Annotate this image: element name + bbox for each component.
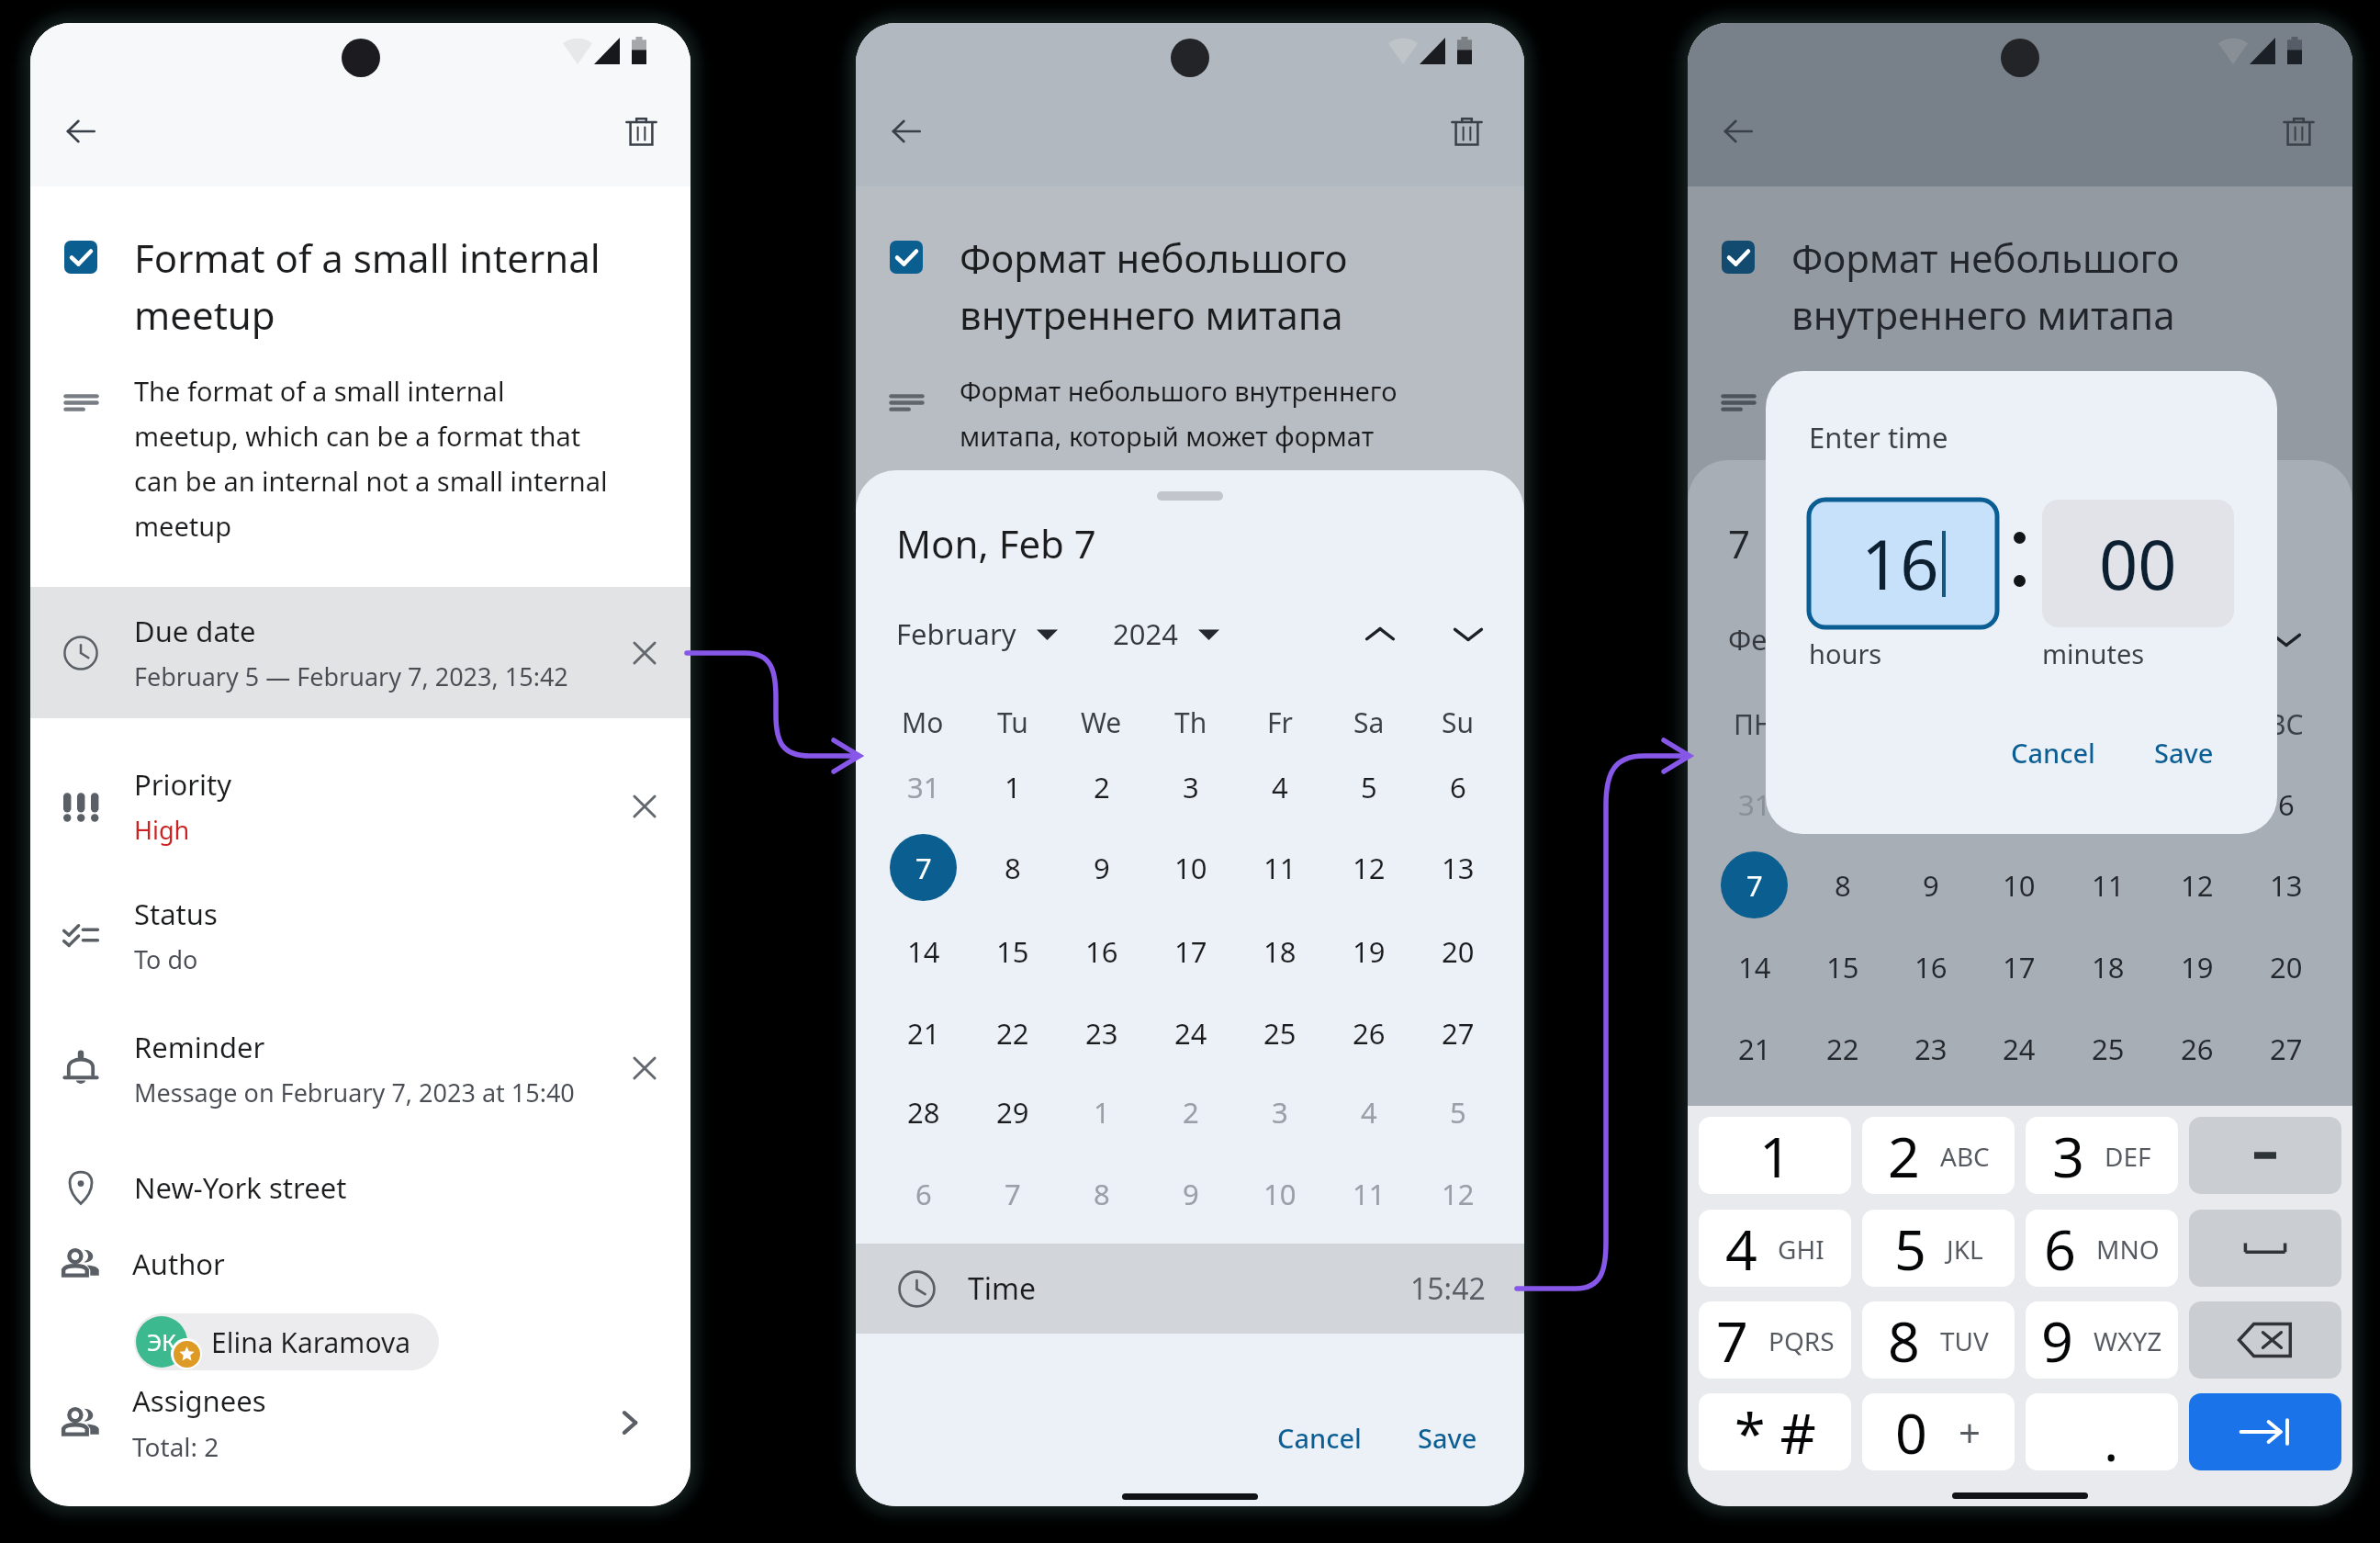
button[interactable]: Time xyxy=(856,1244,1524,1334)
button[interactable]: 16 xyxy=(1809,500,1997,627)
button[interactable]: 4 xyxy=(1246,753,1313,820)
button[interactable]: 10 xyxy=(1985,851,2052,918)
button[interactable]: 11 xyxy=(1335,1160,1402,1227)
button[interactable]: 1 xyxy=(1068,1078,1135,1145)
button[interactable]: Open assignees xyxy=(603,1397,655,1448)
button[interactable]: Next month xyxy=(1440,609,1497,659)
button[interactable]: 9 xyxy=(2026,1301,2178,1379)
button[interactable]: 1 xyxy=(979,753,1046,820)
button[interactable]: Cancel xyxy=(1993,725,2114,780)
button[interactable]: Status xyxy=(30,871,690,1000)
button[interactable]: 10 xyxy=(1157,834,1224,901)
button[interactable]: 27 xyxy=(1424,999,1491,1066)
button[interactable]: 19 xyxy=(1335,918,1402,985)
button[interactable]: Due date xyxy=(30,587,690,718)
button[interactable]: 28 xyxy=(890,1078,957,1145)
button[interactable]: Save xyxy=(1399,1410,1496,1465)
button[interactable]: Reminder xyxy=(30,1000,690,1136)
button[interactable]: Task done xyxy=(64,241,97,274)
button[interactable] xyxy=(1809,771,1876,838)
button[interactable]: * # xyxy=(1699,1393,1851,1470)
button[interactable]: 5 xyxy=(1335,753,1402,820)
button[interactable]: Task done xyxy=(890,241,923,274)
button[interactable]: 00 xyxy=(2042,500,2234,627)
button[interactable]: 2 xyxy=(1862,1117,2015,1194)
button[interactable]: 2 xyxy=(1157,1078,1224,1145)
button[interactable]: Back xyxy=(51,102,110,161)
button[interactable]: 7 xyxy=(1699,1301,1851,1379)
button[interactable]: 13 xyxy=(1424,834,1491,901)
button[interactable]: 3 xyxy=(2026,1117,2178,1194)
button[interactable] xyxy=(1897,771,1964,838)
button[interactable]: 8 xyxy=(1862,1301,2015,1379)
button[interactable]: 16 xyxy=(1068,918,1135,985)
button[interactable]: del xyxy=(2189,1301,2341,1379)
button[interactable] xyxy=(2074,771,2141,838)
button[interactable]: 21 xyxy=(1721,1015,1788,1082)
button[interactable]: New-York street xyxy=(30,1136,690,1239)
button[interactable]: Back xyxy=(877,102,936,161)
button[interactable]: Assignees xyxy=(30,1381,690,1464)
button[interactable]: 18 xyxy=(1246,918,1313,985)
button[interactable]: Clear Priority xyxy=(619,781,670,832)
button[interactable]: 12 xyxy=(1424,1160,1491,1227)
button[interactable]: Next month xyxy=(2261,614,2312,664)
button[interactable]: minus xyxy=(2189,1117,2341,1194)
button[interactable]: 14 xyxy=(890,918,957,985)
button[interactable]: 26 xyxy=(2163,1015,2230,1082)
button[interactable]: 9 xyxy=(1157,1160,1224,1227)
button[interactable]: 4 xyxy=(1335,1078,1402,1145)
button[interactable]: 7 xyxy=(1721,851,1788,918)
button[interactable]: 15 xyxy=(1809,933,1876,1000)
button[interactable]: 22 xyxy=(1809,1015,1876,1082)
button[interactable]: Author xyxy=(30,1222,690,1305)
button[interactable]: space xyxy=(2189,1210,2341,1287)
button[interactable]: 23 xyxy=(1897,1015,1964,1082)
button[interactable]: February xyxy=(896,614,1058,653)
button[interactable]: 1 xyxy=(1699,1117,1851,1194)
button[interactable]: 22 xyxy=(979,999,1046,1066)
button[interactable]: 8 xyxy=(979,834,1046,901)
button[interactable]: 9 xyxy=(1897,851,1964,918)
button[interactable]: 6 xyxy=(890,1160,957,1227)
button[interactable]: Back xyxy=(1709,102,1768,161)
button[interactable] xyxy=(2163,771,2230,838)
button[interactable]: Priority xyxy=(30,741,690,871)
button[interactable]: 2 xyxy=(1068,753,1135,820)
button[interactable]: 11 xyxy=(2074,851,2141,918)
button[interactable]: Task done xyxy=(1722,241,1755,274)
button[interactable]: Clear Due date xyxy=(619,627,670,679)
button[interactable]: Delete xyxy=(2269,102,2328,161)
button[interactable]: 3 xyxy=(1157,753,1224,820)
button[interactable]: ЭК xyxy=(134,1313,439,1370)
button[interactable]: 6 xyxy=(2026,1210,2178,1287)
button[interactable]: Save xyxy=(2136,725,2232,780)
button[interactable]: 5 xyxy=(1424,1078,1491,1145)
button[interactable]: 27 xyxy=(2252,1015,2319,1082)
button[interactable]: Delete xyxy=(612,102,670,161)
button[interactable]: 9 xyxy=(1068,834,1135,901)
button[interactable]: 8 xyxy=(1809,851,1876,918)
button[interactable]: Cancel xyxy=(1259,1410,1380,1465)
button[interactable]: 8 xyxy=(1068,1160,1135,1227)
button[interactable]: 4 xyxy=(1699,1210,1851,1287)
button[interactable]: 11 xyxy=(1246,834,1313,901)
button[interactable]: 19 xyxy=(2163,933,2230,1000)
button[interactable]: 2024 xyxy=(1113,614,1219,653)
button[interactable]: 6 xyxy=(1424,753,1491,820)
button[interactable]: 16 xyxy=(1897,933,1964,1000)
button[interactable]: 25 xyxy=(2074,1015,2141,1082)
button[interactable]: 6 xyxy=(2252,771,2319,838)
button[interactable]: 31 xyxy=(1721,771,1788,838)
button[interactable]: 14 xyxy=(1721,933,1788,1000)
button[interactable]: 26 xyxy=(1335,999,1402,1066)
button[interactable]: 18 xyxy=(2074,933,2141,1000)
button[interactable]: 20 xyxy=(1424,918,1491,985)
button[interactable]: 23 xyxy=(1068,999,1135,1066)
button[interactable]: 25 xyxy=(1246,999,1313,1066)
button[interactable]: 7 xyxy=(979,1160,1046,1227)
button[interactable]: Previous month xyxy=(1352,609,1409,659)
button[interactable]: 17 xyxy=(1985,933,2052,1000)
button[interactable]: 3 xyxy=(1246,1078,1313,1145)
button[interactable]: 21 xyxy=(890,999,957,1066)
